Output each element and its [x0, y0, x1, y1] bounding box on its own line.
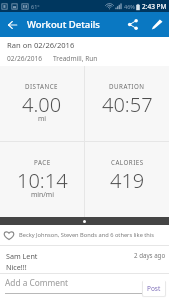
staticText: 10:14 [17, 167, 68, 194]
staticText: DURATION [109, 82, 145, 90]
button[interactable]: Becky Johnson, Steven Bonds and 6 others… [0, 225, 169, 245]
staticText: Ran on 02/26/2016 [7, 40, 75, 50]
staticText: 4.00 [22, 91, 62, 118]
staticText: CALORIES [111, 158, 144, 166]
button[interactable]: Post [143, 280, 165, 296]
button[interactable]: CALORIES [85, 142, 169, 217]
staticText: min/mi [31, 190, 54, 199]
staticText: 61° [31, 3, 40, 10]
staticText: Becky Johnson, Steven Bonds and 6 others… [19, 231, 155, 239]
staticText: Treadmill, Run [53, 54, 98, 63]
staticText: 2:43 PM [142, 2, 167, 11]
button[interactable]: Edit [145, 12, 169, 37]
staticText: Sam Lent [6, 251, 38, 261]
button[interactable]: Add a Comment [5, 274, 142, 300]
staticText: DISTANCE [25, 82, 59, 90]
staticText: Add a Comment [5, 277, 69, 288]
staticText: Nice!!! [6, 262, 27, 272]
staticText: 46% [124, 3, 135, 10]
staticText: 419 [110, 167, 145, 194]
button[interactable]: Navigate up [0, 12, 25, 37]
staticText: PACE [34, 158, 51, 166]
button[interactable]: PACE [0, 142, 84, 217]
button[interactable]: DURATION [85, 66, 169, 141]
staticText: 02/26/2016 [7, 54, 43, 63]
button[interactable]: DISTANCE [0, 66, 84, 141]
staticText: Workout Details [27, 18, 100, 31]
staticText: 40:57 [102, 91, 153, 118]
button[interactable]: Share [121, 12, 145, 37]
staticText: 2 days ago [134, 251, 166, 259]
staticText: mi [38, 114, 47, 123]
staticText: Post [147, 284, 161, 293]
